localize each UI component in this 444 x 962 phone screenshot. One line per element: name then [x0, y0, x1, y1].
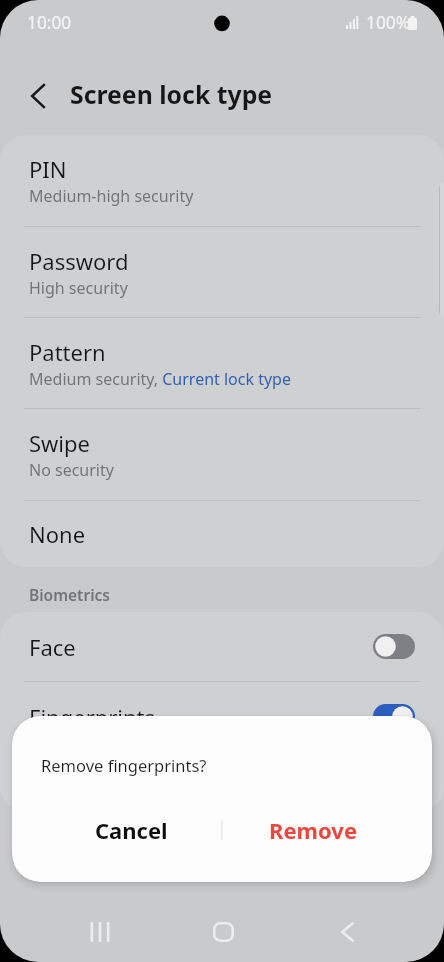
button[interactable]: Home [186, 908, 261, 956]
staticText: Remove fingerprints? [41, 754, 207, 776]
staticText: Fingerprints [29, 702, 156, 732]
staticText: Medium-high security [29, 185, 194, 207]
staticText: Remove [269, 815, 358, 845]
staticText: 100% [366, 11, 411, 35]
button[interactable]: Pattern [0, 318, 444, 408]
button[interactable]: Recent apps [62, 908, 137, 956]
staticText: High security [29, 277, 128, 299]
button[interactable]: Swipe [0, 409, 444, 500]
button[interactable]: Face [0, 612, 444, 681]
button[interactable]: None [0, 501, 444, 567]
button[interactable]: Fingerprints [0, 682, 444, 751]
button[interactable]: Remove [223, 800, 403, 860]
staticText: Medium security, Current lock type [29, 368, 291, 390]
staticText: Password [29, 246, 129, 276]
staticText: PIN [29, 154, 67, 184]
staticText: Biometrics [29, 584, 110, 605]
button[interactable]: PIN [0, 135, 444, 226]
button[interactable]: Back [310, 908, 385, 956]
staticText: Swipe [29, 428, 90, 458]
button[interactable]: Navigate up [16, 74, 60, 118]
button[interactable]: Cancel [41, 800, 221, 860]
staticText: 10:00 [27, 11, 72, 35]
staticText: Cancel [95, 815, 168, 845]
staticText: None [29, 519, 86, 549]
button[interactable]: Password [0, 227, 444, 317]
staticText: Screen lock type [70, 77, 273, 111]
staticText: No security [29, 459, 114, 481]
staticText: Pattern [29, 337, 106, 367]
staticText: Face [29, 632, 76, 662]
